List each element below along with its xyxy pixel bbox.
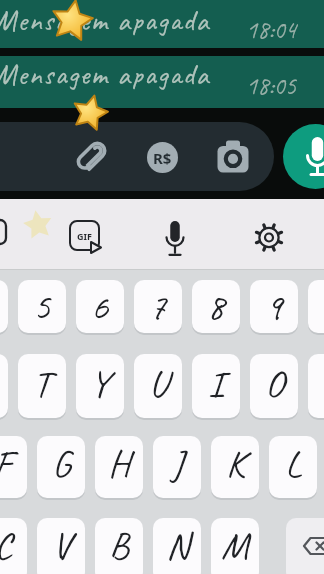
- button[interactable]: F: [0, 436, 27, 498]
- button[interactable]: P: [308, 354, 324, 418]
- staticText: I: [208, 360, 224, 408]
- staticText: Mensagem apagada: [0, 2, 210, 39]
- staticText: 6: [91, 283, 109, 331]
- button[interactable]: U: [134, 354, 182, 418]
- staticText: G: [52, 440, 71, 488]
- button[interactable]: Y: [76, 354, 124, 418]
- staticText: H: [108, 440, 130, 488]
- staticText: K: [226, 440, 245, 488]
- button[interactable]: K: [211, 436, 259, 498]
- staticText: R$: [153, 148, 172, 168]
- button[interactable]: [216, 140, 249, 174]
- button[interactable]: [159, 217, 191, 255]
- button[interactable]: 7: [134, 280, 182, 333]
- button[interactable]: 5: [18, 280, 66, 333]
- button[interactable]: H: [95, 436, 143, 498]
- staticText: B: [109, 522, 129, 570]
- button[interactable]: R$: [147, 142, 178, 173]
- button[interactable]: [283, 124, 324, 189]
- staticText: T: [33, 360, 51, 408]
- staticText: 7: [149, 283, 167, 331]
- button[interactable]: M: [211, 518, 259, 574]
- button[interactable]: I: [192, 354, 240, 418]
- staticText: Mensagem apagada: [0, 56, 210, 93]
- staticText: L: [285, 440, 302, 488]
- staticText: N: [166, 522, 189, 570]
- staticText: O: [265, 360, 284, 408]
- staticText: 8: [207, 283, 225, 331]
- button[interactable]: [0, 56, 324, 108]
- staticText: C: [0, 522, 12, 570]
- button[interactable]: N: [153, 518, 201, 574]
- button[interactable]: B: [95, 518, 143, 574]
- button[interactable]: 9: [250, 280, 298, 333]
- button[interactable]: GIF: [70, 221, 99, 250]
- button[interactable]: G: [37, 436, 85, 498]
- button[interactable]: [20, 207, 56, 243]
- staticText: F: [0, 440, 12, 488]
- staticText: 18:05: [246, 70, 296, 102]
- button[interactable]: 4: [0, 280, 8, 333]
- button[interactable]: R: [0, 354, 8, 418]
- button[interactable]: [286, 518, 324, 574]
- button[interactable]: T: [18, 354, 66, 418]
- button[interactable]: [252, 221, 286, 255]
- staticText: GIF: [77, 230, 92, 242]
- button[interactable]: J: [153, 436, 201, 498]
- button[interactable]: L: [269, 436, 317, 498]
- button[interactable]: V: [37, 518, 85, 574]
- button[interactable]: [76, 142, 106, 172]
- button[interactable]: 8: [192, 280, 240, 333]
- button[interactable]: [0, 0, 324, 48]
- staticText: J: [171, 440, 183, 488]
- staticText: V: [52, 522, 71, 570]
- button[interactable]: C: [0, 518, 27, 574]
- button[interactable]: 6: [76, 280, 124, 333]
- button[interactable]: [0, 122, 274, 191]
- staticText: 9: [265, 283, 283, 331]
- button[interactable]: 0: [308, 280, 324, 333]
- staticText: Y: [90, 360, 110, 408]
- button[interactable]: O: [250, 354, 298, 418]
- staticText: M: [221, 522, 249, 570]
- staticText: 5: [33, 283, 51, 331]
- staticText: 18:04: [246, 14, 296, 46]
- staticText: U: [149, 360, 168, 408]
